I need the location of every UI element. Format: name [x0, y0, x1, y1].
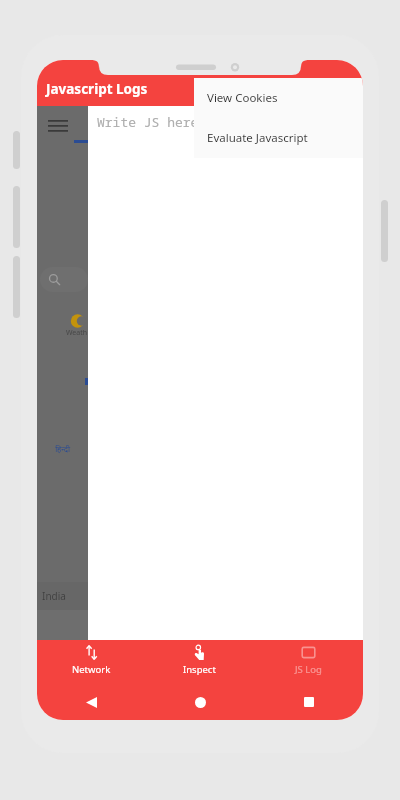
staticText: JS Log — [295, 663, 322, 676]
button[interactable]: Home — [185, 687, 215, 717]
button[interactable]: Network — [37, 640, 145, 683]
staticText: हिन्दी — [55, 443, 71, 454]
other: Menu — [48, 119, 68, 131]
staticText: Inspect — [183, 663, 216, 676]
button[interactable]: Back — [76, 687, 106, 717]
staticText: Weath — [66, 328, 88, 338]
button[interactable]: Recents — [294, 687, 324, 717]
staticText: Evaluate Javascript — [207, 130, 308, 146]
button[interactable]: Evaluate Javascript — [194, 118, 363, 158]
staticText: India — [42, 589, 66, 603]
staticText: Write JS here — [97, 113, 199, 131]
button[interactable]: Inspect — [145, 640, 254, 683]
staticText: Javascript Logs — [46, 80, 148, 98]
staticText: Network — [72, 663, 111, 676]
button[interactable]: JS Log — [254, 640, 363, 683]
button[interactable]: View Cookies — [194, 78, 363, 118]
staticText: View Cookies — [207, 90, 278, 106]
